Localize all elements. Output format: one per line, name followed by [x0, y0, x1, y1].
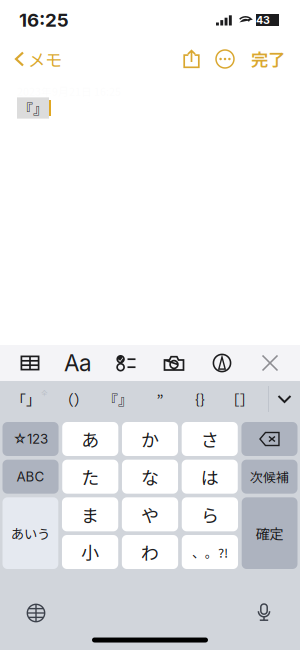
button[interactable]: ” [140, 384, 180, 414]
staticText: ［］ [225, 388, 255, 410]
staticText: （） [59, 388, 89, 410]
staticText: 、。?! [192, 543, 228, 561]
button[interactable]: 次のキーボード [16, 598, 56, 628]
button[interactable]: マークアップ [204, 345, 240, 381]
staticText: さ [201, 426, 219, 452]
staticText: わ [141, 539, 159, 565]
staticText: た [81, 464, 99, 490]
staticText: ま [81, 501, 99, 527]
button[interactable]: 『』 [96, 384, 140, 414]
staticText: メモ [28, 46, 62, 72]
button[interactable]: カメラ [156, 345, 192, 381]
staticText: は [201, 464, 219, 490]
button[interactable]: その他 [207, 42, 243, 76]
staticText: な [141, 464, 159, 490]
staticText: 16:25 [19, 9, 69, 31]
button[interactable]: チェックリスト [108, 345, 144, 381]
staticText: 『』 [103, 388, 133, 410]
button[interactable]: 次候補 [241, 460, 297, 494]
button[interactable]: あいう [2, 497, 58, 569]
button[interactable]: あ [62, 422, 118, 456]
button[interactable]: ま [62, 497, 118, 531]
staticText: 「」 [11, 388, 41, 410]
button[interactable]: ☆123 [2, 422, 59, 456]
button[interactable]: 表 [12, 345, 48, 381]
button[interactable]: ｛｝ [180, 384, 220, 414]
button[interactable]: や [122, 497, 178, 531]
button[interactable]: メモ [7, 42, 70, 76]
staticText: 43 [256, 13, 270, 26]
staticText: あ [81, 426, 99, 452]
button[interactable]: わ [122, 535, 178, 569]
staticText: 全 [41, 388, 50, 398]
staticText: や [141, 501, 159, 527]
staticText: 確定 [256, 523, 284, 543]
button[interactable]: か [122, 422, 178, 456]
staticText: 小 [81, 539, 99, 565]
button[interactable]: さ [182, 422, 238, 456]
staticText: か [141, 426, 159, 452]
staticText: Aa [64, 349, 92, 377]
button[interactable]: た [62, 460, 118, 494]
staticText: 『』 [18, 97, 48, 119]
staticText: ら [201, 501, 219, 527]
button[interactable]: 候補を展開 [269, 384, 300, 414]
staticText: ” [156, 388, 163, 410]
button[interactable]: 共有 [176, 42, 207, 76]
button[interactable]: 、。?! [182, 535, 238, 569]
button[interactable]: 閉じる [252, 345, 288, 381]
button[interactable]: 音声入力 [244, 598, 284, 628]
staticText: ☆123 [13, 431, 48, 447]
button[interactable]: 小 [62, 535, 118, 569]
staticText: 完了 [251, 46, 285, 72]
staticText: ABC [16, 469, 44, 485]
staticText: ｛｝ [185, 388, 215, 410]
staticText: 2023年9月21日 16:25 [17, 83, 121, 99]
button[interactable]: 「」 [0, 384, 52, 414]
button[interactable]: 書式 [60, 345, 96, 381]
staticText: 次候補 [250, 467, 289, 486]
button[interactable]: 削除 [241, 422, 297, 456]
button[interactable]: 確定 [242, 497, 297, 569]
button[interactable]: な [122, 460, 178, 494]
button[interactable]: ABC [2, 460, 59, 494]
button[interactable]: ら [182, 497, 238, 531]
staticText: あいう [11, 523, 50, 543]
button[interactable]: は [182, 460, 238, 494]
button[interactable]: （） [52, 384, 96, 414]
button[interactable]: ［］ [220, 384, 260, 414]
button[interactable]: 完了 [243, 42, 293, 76]
